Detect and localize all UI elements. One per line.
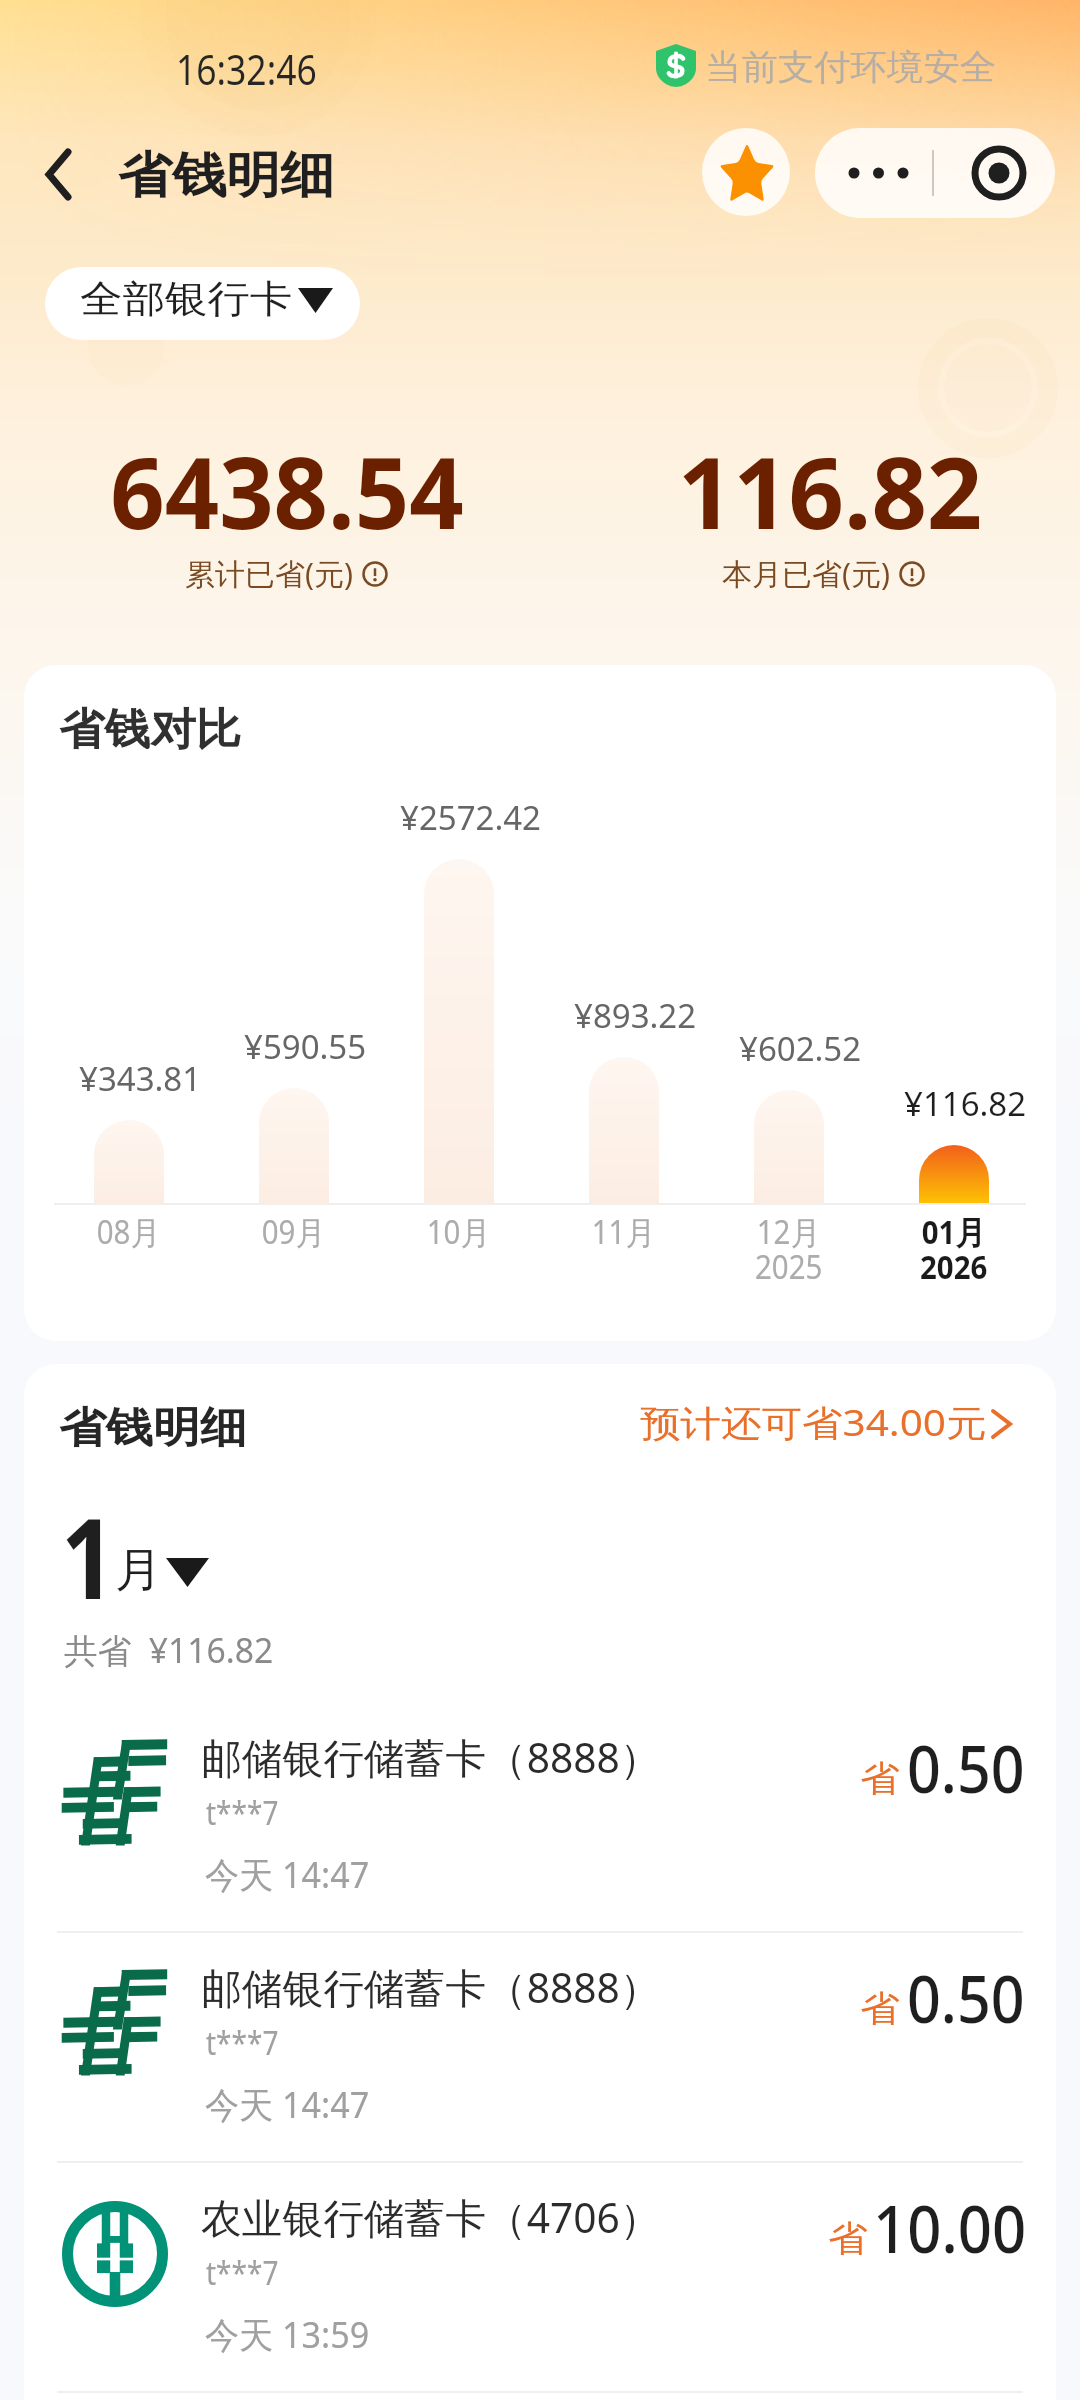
staticText: 09月	[262, 1210, 325, 1254]
button[interactable]: Select month	[54, 1500, 254, 1596]
staticText: 预计还可省34.00元	[640, 1398, 988, 1447]
staticText: 10月	[427, 1210, 490, 1254]
button[interactable]: 邮储银行储蓄卡（8888）	[24, 1702, 1056, 1932]
staticText: 省钱明细	[118, 145, 335, 207]
staticText: 今天 14:47	[205, 1850, 370, 1899]
staticText: t***7	[206, 2021, 279, 2065]
staticText: 08月	[97, 1210, 160, 1254]
staticText: t***7	[206, 1791, 279, 1835]
staticText: 省	[860, 1986, 900, 2031]
staticText: 当前支付环境安全	[705, 45, 996, 89]
staticText: 全部银行卡	[80, 275, 292, 323]
staticText: 11月	[592, 1210, 655, 1254]
staticText: 1	[61, 1479, 116, 1632]
staticText: 省	[860, 1756, 900, 1801]
button[interactable]: 邮储银行储蓄卡（8888）	[24, 1932, 1056, 2162]
staticText: 2025	[755, 1245, 823, 1289]
staticText: 今天 14:47	[205, 2080, 370, 2129]
staticText: 邮储银行储蓄卡（8888）	[201, 1959, 661, 2015]
staticText: 农业银行储蓄卡（4706）	[201, 2189, 661, 2245]
button[interactable]: 累计已省(元)	[185, 553, 388, 594]
staticText: ¥602.52	[739, 1026, 862, 1071]
staticText: 12月	[757, 1210, 820, 1254]
button[interactable]: 全部银行卡	[45, 267, 360, 340]
staticText: 6438.54	[110, 424, 464, 557]
button[interactable]: 农业银行储蓄卡（4706）	[24, 2162, 1056, 2392]
staticText: ¥893.22	[574, 993, 697, 1038]
staticText: 16:32:46	[176, 41, 317, 97]
staticText: 省钱对比	[59, 703, 241, 757]
staticText: 省	[828, 2216, 868, 2261]
button[interactable]: 本月已省(元)	[722, 553, 925, 594]
staticText: 今天 13:59	[205, 2310, 370, 2359]
staticText: ¥2572.42	[400, 795, 541, 840]
staticText: 2026	[920, 1245, 988, 1289]
button[interactable]: Close	[937, 128, 1055, 218]
staticText: 共省 ¥116.82	[64, 1627, 274, 1673]
staticText: 省钱明细	[59, 1402, 247, 1455]
button[interactable]: Back	[14, 128, 102, 220]
staticText: 本月已省(元)	[722, 553, 890, 594]
staticText: 0.50	[907, 1724, 1025, 1813]
button[interactable]: Favourite	[702, 128, 790, 216]
staticText: ¥590.55	[244, 1024, 367, 1069]
staticText: ¥343.81	[79, 1056, 202, 1101]
staticText: 累计已省(元)	[185, 553, 353, 594]
button[interactable]: More options	[815, 128, 933, 218]
staticText: 116.82	[677, 424, 982, 557]
staticText: 0.50	[907, 1954, 1025, 2043]
staticText: 邮储银行储蓄卡（8888）	[201, 1729, 661, 1785]
button[interactable]: 预计还可省34.00元	[616, 1384, 1036, 1464]
staticText: ¥116.82	[904, 1081, 1027, 1126]
staticText: 月	[115, 1541, 162, 1600]
staticText: t***7	[206, 2251, 279, 2295]
staticText: 01月	[922, 1210, 985, 1254]
staticText: 10.00	[873, 2184, 1027, 2273]
